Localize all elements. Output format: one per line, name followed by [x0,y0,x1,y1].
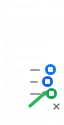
button[interactable] [3,78,61,91]
button[interactable] [3,65,61,78]
button[interactable] [3,91,61,104]
button[interactable] [3,104,61,117]
button[interactable] [3,52,61,65]
button[interactable]: Text message [28,88,57,99]
button[interactable] [0,0,64,125]
button[interactable]: Start chat [28,64,56,75]
button[interactable]: Close [51,101,61,111]
button[interactable]: Voice message [28,76,53,87]
